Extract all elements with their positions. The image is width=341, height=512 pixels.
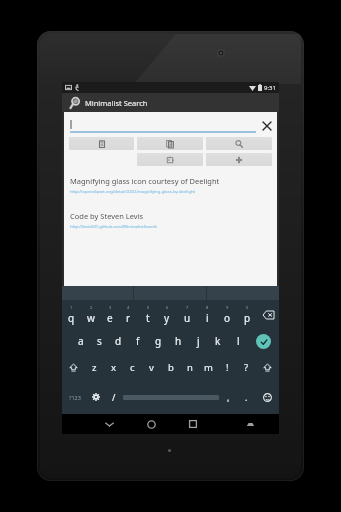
staticText: l <box>237 334 240 348</box>
button[interactable]: App icon <box>67 95 82 110</box>
button[interactable]: Change keyboard <box>237 414 263 434</box>
button[interactable]: http://openclipart.org/detail/2232/magni… <box>70 189 196 195</box>
button[interactable]: l <box>228 328 248 354</box>
staticText: b <box>168 361 174 374</box>
button[interactable]: Shift <box>256 354 279 380</box>
staticText: p <box>244 311 251 325</box>
button[interactable]: 8 <box>197 302 217 328</box>
staticText: v <box>149 361 154 374</box>
staticText: . <box>245 391 248 403</box>
staticText: Code by Steven Levis <box>70 211 144 221</box>
button[interactable]: ?123 <box>62 380 87 414</box>
button[interactable]: c <box>123 354 142 380</box>
button[interactable]: Search <box>206 137 272 150</box>
button[interactable]: / <box>105 380 123 414</box>
staticText: i <box>206 311 209 325</box>
staticText: e <box>107 311 113 325</box>
staticText: d <box>115 334 122 348</box>
button[interactable]: Plugins <box>137 153 203 166</box>
button[interactable]: Backspace <box>257 302 279 328</box>
button[interactable]: 6 <box>157 302 177 328</box>
staticText: u <box>184 311 191 325</box>
button[interactable]: Copy <box>137 137 203 150</box>
button[interactable]: Add <box>206 153 272 166</box>
button[interactable]: Paste <box>69 137 134 150</box>
staticText: 5 <box>147 305 150 310</box>
button[interactable]: 1 <box>62 302 81 328</box>
staticText: c <box>130 361 135 374</box>
button[interactable]: s <box>90 328 109 354</box>
staticText: n <box>187 361 193 374</box>
staticText: 6 <box>166 305 169 310</box>
button[interactable]: Enter <box>248 328 279 354</box>
button[interactable]: m <box>199 354 218 380</box>
button[interactable]: 2 <box>81 302 100 328</box>
button[interactable]: Shift <box>62 354 85 380</box>
button[interactable]: Emoji <box>255 380 279 414</box>
staticText: ?123 <box>69 394 81 401</box>
button[interactable]: Recent apps <box>180 414 206 434</box>
button[interactable]: ? <box>237 354 256 380</box>
staticText: s <box>97 334 102 348</box>
staticText: 4 <box>127 305 130 310</box>
button[interactable]: d <box>109 328 128 354</box>
button[interactable]: 0 <box>237 302 257 328</box>
staticText: w <box>87 311 95 325</box>
button[interactable]: 5 <box>138 302 157 328</box>
staticText: q <box>68 311 75 325</box>
staticText: / <box>112 391 116 403</box>
button[interactable]: Space <box>123 386 219 408</box>
button[interactable]: 4 <box>119 302 138 328</box>
button[interactable]: Settings <box>87 380 105 414</box>
staticText: z <box>92 361 97 374</box>
button[interactable]: Clear search <box>260 119 273 132</box>
button[interactable]: 9 <box>217 302 237 328</box>
button[interactable]: Back <box>96 414 122 434</box>
staticText: ! <box>226 361 229 374</box>
staticText: j <box>197 334 200 348</box>
staticText: k <box>215 334 221 348</box>
staticText: , <box>227 391 230 403</box>
button[interactable]: http://levis501.github.com/MinimalistSea… <box>70 224 158 230</box>
button[interactable]: k <box>208 328 228 354</box>
button[interactable] <box>70 116 256 134</box>
button[interactable]: g <box>148 328 168 354</box>
staticText: h <box>175 334 182 348</box>
button[interactable]: Home <box>138 414 164 434</box>
staticText: Minimalist Search <box>85 98 148 108</box>
staticText: f <box>136 334 140 348</box>
staticText: r <box>126 311 131 325</box>
button[interactable]: x <box>104 354 123 380</box>
staticText: Magnifying glass icon courtesy of Deelig… <box>70 176 220 186</box>
button[interactable]: n <box>180 354 199 380</box>
button[interactable]: b <box>161 354 180 380</box>
staticText: 9 <box>226 305 229 310</box>
button[interactable]: h <box>168 328 188 354</box>
staticText: m <box>204 361 213 374</box>
staticText: y <box>164 311 170 325</box>
button[interactable]: 3 <box>100 302 119 328</box>
staticText: x <box>111 361 117 374</box>
button[interactable]: z <box>85 354 104 380</box>
staticText: o <box>224 311 231 325</box>
staticText: 8 <box>206 305 209 310</box>
staticText: g <box>155 334 162 348</box>
button[interactable]: f <box>128 328 148 354</box>
staticText: 9:31 <box>264 84 276 92</box>
staticText: t <box>146 311 150 325</box>
button[interactable]: 7 <box>177 302 197 328</box>
button[interactable]: a <box>71 328 90 354</box>
staticText: 2 <box>90 305 93 310</box>
staticText: 0 <box>246 305 249 310</box>
button[interactable]: j <box>188 328 208 354</box>
button[interactable]: v <box>142 354 161 380</box>
staticText: 1 <box>70 305 73 310</box>
button[interactable]: . <box>237 380 255 414</box>
staticText: ? <box>244 361 249 374</box>
button[interactable]: ! <box>218 354 237 380</box>
staticText: 7 <box>186 305 189 310</box>
button[interactable]: , <box>219 380 237 414</box>
